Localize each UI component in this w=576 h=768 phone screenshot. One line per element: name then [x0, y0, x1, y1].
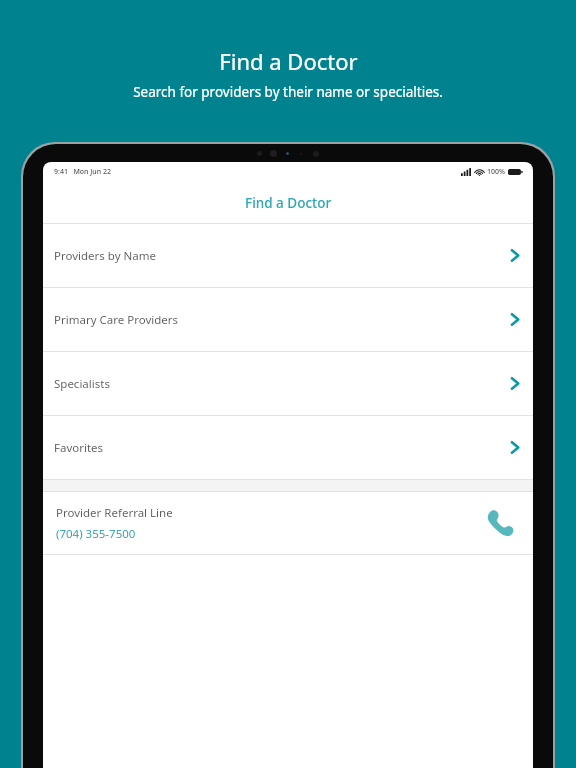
- button[interactable]: Primary Care Providers: [43, 288, 533, 351]
- button[interactable]: Providers by Name: [43, 224, 533, 287]
- staticText: Find a Doctor: [245, 194, 332, 212]
- staticText: Primary Care Providers: [54, 312, 511, 328]
- staticText: Providers by Name: [54, 248, 511, 264]
- staticText: Find a Doctor: [219, 46, 358, 76]
- staticText: 100%: [487, 167, 505, 177]
- button[interactable]: Specialists: [43, 352, 533, 415]
- staticText: Provider Referral Line: [56, 505, 173, 521]
- button[interactable]: Call Provider Referral Line: [483, 506, 517, 540]
- staticText: (704) 355-7500: [56, 526, 136, 542]
- staticText: Search for providers by their name or sp…: [133, 83, 443, 101]
- staticText: Specialists: [54, 376, 511, 392]
- button[interactable]: Provider Referral Line: [43, 492, 533, 554]
- staticText: Favorites: [54, 440, 511, 456]
- button[interactable]: Favorites: [43, 416, 533, 479]
- staticText: 9:41 Mon Jun 22: [54, 167, 111, 177]
